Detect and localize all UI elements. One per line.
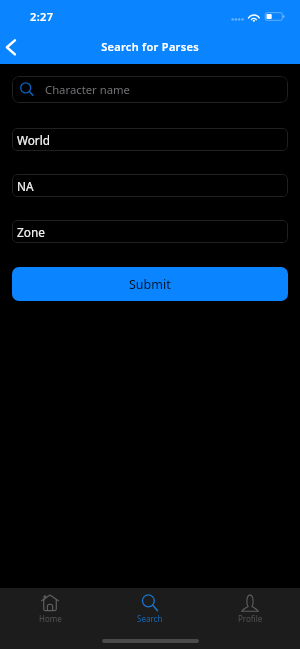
staticText: Home [39, 613, 62, 624]
staticText: Search [137, 613, 163, 624]
staticText: NA [17, 178, 34, 194]
button[interactable]: Zone [12, 220, 288, 243]
staticText: 2:27 [30, 9, 54, 24]
staticText: Character name [45, 82, 130, 97]
staticText: Search for Parses [101, 39, 199, 54]
staticText: Submit [129, 276, 171, 293]
staticText: Zone [17, 224, 45, 240]
button[interactable]: Back [0, 30, 30, 64]
staticText: Profile [238, 613, 263, 624]
button[interactable]: Home [0, 589, 100, 628]
button[interactable]: Profile [200, 589, 300, 628]
button[interactable]: Search [100, 589, 200, 628]
button[interactable]: NA [12, 174, 288, 197]
staticText: World [17, 132, 51, 148]
button[interactable]: Character name [12, 76, 288, 103]
button[interactable]: World [12, 128, 288, 151]
button[interactable]: Submit [12, 267, 288, 301]
